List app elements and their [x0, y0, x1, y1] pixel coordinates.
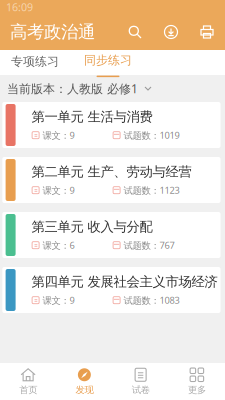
staticText: 第二单元 生产、劳动与经营 — [32, 164, 192, 180]
staticText: 第三单元 收入与分配 — [32, 219, 153, 235]
button[interactable]: 第一单元 生活与消费 — [0, 102, 225, 148]
button[interactable]: 专项练习 — [10, 50, 60, 75]
button[interactable]: 同步练习 — [83, 50, 133, 75]
staticText: 课文：9 — [40, 129, 75, 141]
staticText: 课文：9 — [40, 294, 75, 306]
button[interactable]: Download — [163, 24, 179, 40]
staticText: 第四单元 发展社会主义市场经济 — [32, 274, 218, 290]
staticText: 课文：9 — [40, 184, 75, 196]
staticText: 当前版本：人教版 必修1 — [7, 80, 138, 96]
button[interactable]: 第四单元 发展社会主义市场经济 — [0, 267, 225, 313]
staticText: 试题数：1083 — [121, 294, 180, 306]
staticText: 发现 — [75, 384, 93, 396]
staticText: 第一单元 生活与消费 — [32, 109, 153, 125]
staticText: 首页 — [19, 384, 37, 396]
staticText: 同步练习 — [84, 53, 132, 68]
button[interactable]: 第二单元 生产、劳动与经营 — [0, 157, 225, 203]
staticText: 试题数：1123 — [121, 184, 180, 196]
button[interactable]: 第三单元 收入与分配 — [0, 212, 225, 258]
staticText: 更多 — [188, 384, 206, 396]
staticText: 16:09 — [6, 0, 33, 14]
button[interactable]: 更多 — [169, 363, 225, 399]
staticText: 试卷 — [132, 384, 150, 396]
button[interactable]: 发现 — [56, 363, 112, 399]
staticText: 专项练习 — [11, 54, 59, 69]
staticText: 试题数：767 — [121, 239, 175, 251]
button[interactable]: Print — [199, 24, 215, 40]
staticText: 高考政治通 — [10, 21, 95, 43]
button[interactable]: 试卷 — [112, 363, 169, 399]
button[interactable]: 首页 — [0, 363, 56, 399]
staticText: 课文：6 — [40, 239, 75, 251]
button[interactable]: Search — [127, 24, 143, 40]
staticText: 试题数：1019 — [121, 129, 180, 141]
